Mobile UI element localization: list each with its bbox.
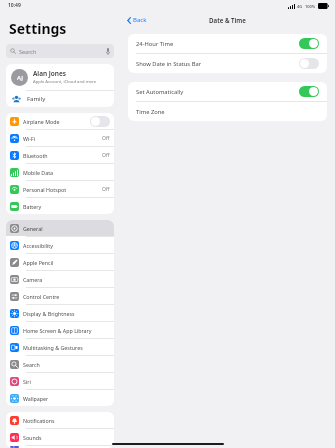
button[interactable]: Home Screen & App Library [6,322,114,338]
button[interactable]: Toggle on [299,38,319,49]
staticText: Camera [23,276,110,283]
staticText: Apple Pencil [23,259,110,266]
button[interactable]: Camera [6,271,114,287]
staticText: 4G [297,4,303,9]
staticText: Family [27,95,46,103]
staticText: Back [133,16,147,24]
button[interactable]: Accessibility [6,237,114,253]
button[interactable]: Airplane Mode [6,113,114,129]
button[interactable]: General [6,220,114,236]
staticText: Mobile Data [23,169,110,176]
button[interactable]: Personal Hotspot [6,181,114,197]
button[interactable]: AJ [6,64,114,90]
staticText: AJ [17,74,23,82]
button[interactable]: Wi-Fi [6,130,114,146]
staticText: Wi-Fi [23,135,102,142]
button[interactable]: 24-Hour Time [128,34,327,53]
button[interactable]: Bluetooth [6,147,114,163]
staticText: Off [102,186,110,193]
staticText: Date & Time [209,16,246,24]
staticText: Off [102,135,110,142]
button[interactable]: Search [6,356,114,372]
staticText: Sounds [23,434,110,441]
button[interactable]: Toggle off [299,58,319,69]
staticText: Wallpaper [23,395,110,402]
staticText: Accessibility [23,242,110,249]
button[interactable]: Siri [6,373,114,389]
button[interactable]: Search [6,44,114,58]
staticText: 24-Hour Time [136,40,299,48]
staticText: General [23,225,110,232]
button[interactable]: Toggle off [90,116,110,127]
staticText: Airplane Mode [23,118,90,125]
button[interactable]: Wallpaper [6,390,114,406]
button[interactable]: Family [6,91,114,107]
staticText: Show Date in Status Bar [136,60,299,68]
button[interactable]: Show Date in Status Bar [128,54,327,73]
staticText: Set Automatically [136,88,299,96]
staticText: Alan Jones [33,69,67,78]
staticText: Multitasking & Gestures [23,344,110,351]
staticText: Siri [23,378,110,385]
button[interactable]: Sounds [6,429,114,445]
staticText: Display & Brightness [23,310,110,317]
button[interactable]: Time Zone [128,102,327,121]
button[interactable]: Apple Pencil [6,254,114,270]
staticText: Personal Hotspot [23,186,102,193]
staticText: 10:49 [8,2,21,9]
staticText: Time Zone [136,108,319,116]
staticText: Settings [9,19,67,38]
button[interactable]: Focus [6,446,114,448]
staticText: Bluetooth [23,152,102,159]
button[interactable]: Control Centre [6,288,114,304]
staticText: Control Centre [23,293,110,300]
staticText: 100% [305,4,316,9]
button[interactable]: Mobile Data [6,164,114,180]
staticText: Notifications [23,417,110,424]
staticText: Search [23,361,110,368]
button[interactable]: Back [125,14,149,26]
staticText: Apple Account, iCloud and more [33,79,97,85]
button[interactable]: Toggle on [299,86,319,97]
button[interactable]: Battery [6,198,114,214]
button[interactable]: Display & Brightness [6,305,114,321]
button[interactable]: Set Automatically [128,82,327,101]
button[interactable]: Notifications [6,412,114,428]
staticText: Off [102,152,110,159]
button[interactable]: Multitasking & Gestures [6,339,114,355]
staticText: Search [19,48,37,55]
staticText: Battery [23,203,110,210]
staticText: Home Screen & App Library [23,327,110,334]
